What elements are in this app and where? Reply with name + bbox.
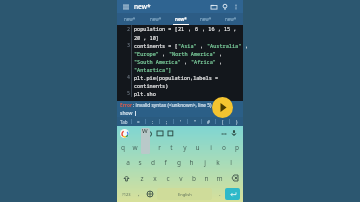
- button[interactable]: More: [218, 128, 229, 139]
- button[interactable]: new*: [168, 13, 193, 25]
- staticText: ,: [197, 42, 207, 49]
- button[interactable]: q: [117, 140, 129, 155]
- staticText: continents): [134, 82, 169, 89]
- button[interactable]: p: [230, 140, 243, 155]
- button[interactable]: s: [134, 155, 146, 170]
- button[interactable]: r: [153, 140, 165, 155]
- staticText: n: [204, 174, 209, 183]
- button[interactable]: Backspace: [226, 170, 243, 186]
- button[interactable]: Stickers: [143, 128, 154, 139]
- button[interactable]: ": [188, 117, 201, 126]
- staticText: W: [142, 127, 148, 135]
- button[interactable]: Shift: [117, 170, 135, 186]
- staticText: s: [138, 158, 142, 167]
- staticText: q: [121, 143, 125, 152]
- button[interactable]: new*: [117, 13, 143, 25]
- staticText: d: [151, 158, 155, 167]
- button[interactable]: Comma: [133, 188, 144, 200]
- staticText: l: [230, 158, 232, 167]
- button[interactable]: Tab: [117, 117, 131, 126]
- button[interactable]: k: [211, 155, 224, 170]
- button[interactable]: =: [132, 117, 145, 126]
- staticText: y: [183, 143, 187, 152]
- button[interactable]: new*: [193, 13, 218, 25]
- staticText: 20 , 10]: [134, 34, 159, 41]
- staticText: , 16 , 15 , 12 ,: [199, 25, 243, 33]
- staticText: continents = [: [134, 42, 178, 49]
- button[interactable]: y: [178, 140, 191, 155]
- button[interactable]: f: [159, 155, 172, 170]
- button[interactable]: t: [165, 140, 178, 155]
- button[interactable]: i: [204, 140, 217, 155]
- button[interactable]: u: [191, 140, 204, 155]
- staticText: h: [189, 158, 194, 167]
- button[interactable]: Period: [214, 188, 225, 200]
- staticText: ': [180, 119, 182, 125]
- staticText: g: [177, 158, 181, 167]
- staticText: j: [204, 158, 206, 167]
- button[interactable]: j: [198, 155, 211, 170]
- button[interactable]: o: [217, 140, 230, 155]
- button[interactable]: z: [135, 170, 148, 186]
- staticText: ,: [138, 190, 140, 198]
- button[interactable]: b: [187, 170, 200, 186]
- button[interactable]: l: [224, 155, 237, 170]
- button[interactable]: ;: [160, 117, 173, 126]
- button[interactable]: #: [202, 117, 215, 126]
- button[interactable]: Translate: [165, 128, 176, 139]
- button[interactable]: Location: [219, 1, 230, 12]
- staticText: ,: [216, 50, 223, 57]
- staticText: b: [192, 174, 196, 183]
- button[interactable]: Menu: [121, 2, 130, 11]
- button[interactable]: new*: [143, 13, 168, 25]
- staticText: i: [210, 143, 212, 152]
- button[interactable]: ': [174, 117, 187, 126]
- button[interactable]: e: [141, 140, 153, 155]
- staticText: ): [236, 119, 238, 125]
- button[interactable]: h: [185, 155, 198, 170]
- staticText: a: [126, 158, 130, 167]
- staticText: :: [152, 119, 154, 125]
- button[interactable]: Folder: [208, 1, 219, 12]
- staticText: "Europe": [134, 50, 159, 57]
- staticText: ,: [185, 25, 195, 32]
- button[interactable]: More options: [230, 1, 241, 12]
- staticText: Error: [120, 102, 133, 109]
- staticText: f: [164, 158, 167, 167]
- staticText: x: [153, 174, 157, 183]
- button[interactable]: English: [157, 188, 212, 200]
- button[interactable]: (: [216, 117, 229, 126]
- button[interactable]: ?123: [120, 188, 133, 200]
- button[interactable]: GIF: [154, 128, 165, 139]
- button[interactable]: g: [172, 155, 185, 170]
- button[interactable]: Run: [212, 97, 233, 118]
- staticText: 3: [127, 42, 131, 49]
- button[interactable]: x: [148, 170, 161, 186]
- button[interactable]: m: [213, 170, 226, 186]
- staticText: ,: [181, 58, 191, 65]
- button[interactable]: Emoji: [144, 188, 155, 200]
- staticText: p: [235, 143, 239, 152]
- staticText: new*: [134, 2, 151, 11]
- button[interactable]: new*: [218, 13, 243, 25]
- staticText: population = [: [134, 25, 178, 32]
- button[interactable]: w: [129, 140, 141, 155]
- button[interactable]: n: [200, 170, 213, 186]
- staticText: k: [216, 158, 220, 167]
- staticText: "Antartica"]: [134, 66, 172, 73]
- button[interactable]: c: [161, 170, 174, 186]
- staticText: o: [222, 143, 226, 152]
- button[interactable]: a: [122, 155, 134, 170]
- staticText: new*: [124, 16, 136, 22]
- staticText: new*: [200, 16, 212, 22]
- button[interactable]: Enter: [225, 188, 240, 200]
- staticText: "Africa": [191, 58, 216, 65]
- button[interactable]: ): [230, 117, 243, 126]
- staticText: #: [207, 119, 210, 125]
- button[interactable]: d: [146, 155, 159, 170]
- button[interactable]: Google: [120, 129, 129, 138]
- button[interactable]: Voice input: [229, 128, 239, 138]
- button[interactable]: v: [174, 170, 187, 186]
- button[interactable]: :: [146, 117, 159, 126]
